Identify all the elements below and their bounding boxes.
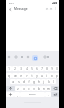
button[interactable]: Back <box>7 6 13 12</box>
button[interactable]: Voice input <box>43 55 47 59</box>
button[interactable]: b <box>36 86 41 91</box>
button[interactable]: l <box>51 79 56 84</box>
staticText: f <box>28 80 30 84</box>
staticText: 0 <box>56 67 58 71</box>
staticText: g <box>33 80 35 84</box>
staticText: r <box>26 74 28 78</box>
staticText: Message <box>14 7 28 11</box>
staticText: English <box>29 93 36 96</box>
button[interactable]: c <box>26 86 31 91</box>
button[interactable]: GIF <box>14 55 18 59</box>
button[interactable]: More options <box>53 6 58 11</box>
staticText: 2 <box>14 67 16 71</box>
button[interactable]: k <box>46 79 51 84</box>
staticText: 7 <box>41 67 43 71</box>
button[interactable]: t <box>29 73 34 78</box>
staticText: 3 <box>20 67 22 71</box>
button[interactable]: d <box>21 79 26 84</box>
button[interactable]: Enter <box>51 92 59 97</box>
staticText: 9 <box>51 67 53 71</box>
button[interactable]: q <box>6 73 12 78</box>
button[interactable]: n <box>41 86 46 91</box>
button[interactable]: p <box>54 73 59 78</box>
button[interactable]: z <box>15 86 21 91</box>
staticText: o <box>51 74 53 78</box>
staticText: l <box>53 80 54 84</box>
button[interactable]: s <box>16 79 21 84</box>
button[interactable]: Sticker <box>20 55 24 59</box>
staticText: q <box>8 74 10 78</box>
button[interactable]: Backspace <box>51 86 59 91</box>
button[interactable]: i <box>44 73 49 78</box>
button[interactable]: 5 <box>29 66 34 71</box>
button[interactable]: v <box>31 86 36 91</box>
staticText: j <box>43 80 44 84</box>
staticText: i <box>46 74 47 78</box>
staticText: 9:41 <box>9 1 14 4</box>
button[interactable]: r <box>24 73 29 78</box>
staticText: 1 <box>8 67 10 71</box>
staticText: w <box>14 74 17 78</box>
button[interactable]: 9 <box>49 66 54 71</box>
button[interactable]: Shift <box>6 86 15 91</box>
button[interactable]: h <box>36 79 41 84</box>
button[interactable]: Undo <box>45 7 49 11</box>
staticText: c <box>28 87 30 91</box>
button[interactable]: Clipboard <box>32 55 38 61</box>
button[interactable]: m <box>46 86 51 91</box>
staticText: b <box>38 87 40 91</box>
button[interactable]: 6 <box>34 66 39 71</box>
staticText: a <box>12 80 14 84</box>
staticText: u <box>41 74 43 78</box>
button[interactable]: 2 <box>12 66 18 71</box>
staticText: m <box>47 87 50 91</box>
button[interactable]: g <box>31 79 36 84</box>
button[interactable]: , <box>14 92 20 97</box>
button[interactable]: 3 <box>18 66 24 71</box>
staticText: e <box>20 74 22 78</box>
button[interactable]: e <box>18 73 24 78</box>
button[interactable]: 4 <box>24 66 29 71</box>
button[interactable]: o <box>49 73 54 78</box>
staticText: n <box>43 87 45 91</box>
staticText: v <box>33 87 35 91</box>
button[interactable]: a <box>10 79 16 84</box>
button[interactable]: Settings <box>46 55 50 59</box>
button[interactable]: w <box>12 73 18 78</box>
staticText: 4 <box>26 67 28 71</box>
button[interactable]: j <box>41 79 46 84</box>
button[interactable]: y <box>34 73 39 78</box>
button[interactable]: Emoji <box>7 55 11 59</box>
staticText: d <box>23 80 25 84</box>
staticText: p <box>56 74 58 78</box>
staticText: , <box>17 93 18 97</box>
button[interactable]: English <box>20 92 45 97</box>
staticText: x <box>23 87 25 91</box>
button[interactable]: Redo <box>49 7 53 11</box>
button[interactable]: Symbols <box>6 92 14 97</box>
staticText: h <box>38 80 40 84</box>
button[interactable]: x <box>21 86 26 91</box>
staticText: z <box>17 87 19 91</box>
staticText: s <box>18 80 20 84</box>
button[interactable]: 8 <box>44 66 49 71</box>
staticText: 5 <box>31 67 33 71</box>
staticText: k <box>48 80 50 84</box>
staticText: y <box>36 74 38 78</box>
button[interactable]: u <box>39 73 44 78</box>
staticText: . <box>48 93 49 97</box>
staticText: 8 <box>46 67 48 71</box>
button[interactable]: f <box>26 79 31 84</box>
button[interactable]: 7 <box>39 66 44 71</box>
staticText: 6 <box>36 67 38 71</box>
staticText: t <box>31 74 33 78</box>
button[interactable]: . <box>45 92 51 97</box>
button[interactable]: Translate <box>26 55 30 59</box>
button[interactable]: 1 <box>6 66 12 71</box>
button[interactable]: 0 <box>54 66 59 71</box>
